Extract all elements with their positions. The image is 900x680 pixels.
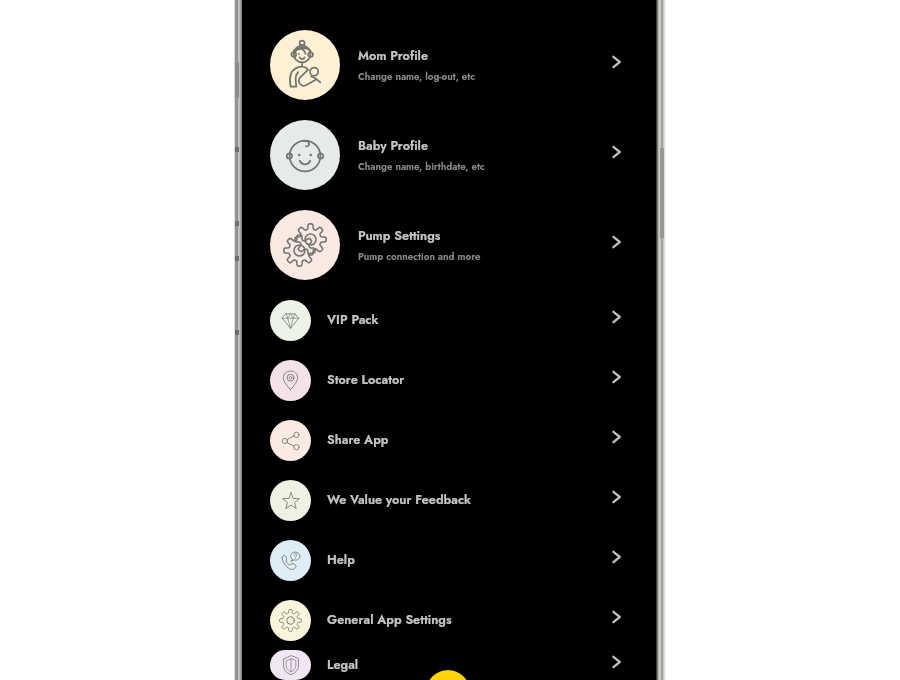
button[interactable]: Baby Profile: [242, 110, 656, 200]
staticText: Pump connection and more: [358, 250, 481, 264]
staticText: Change name, log-out, etc: [358, 70, 476, 84]
button[interactable]: Pump Settings: [242, 200, 656, 290]
button[interactable]: General App Settings: [242, 590, 656, 650]
button[interactable]: Legal: [242, 650, 656, 680]
staticText: Help: [327, 551, 611, 569]
button[interactable]: Mom Profile: [242, 20, 656, 110]
button[interactable]: VIP Pack: [242, 290, 656, 350]
staticText: We Value your Feedback: [327, 491, 611, 509]
staticText: General App Settings: [327, 611, 611, 629]
staticText: Share App: [327, 431, 611, 449]
staticText: Store Locator: [327, 371, 611, 389]
staticText: VIP Pack: [327, 311, 611, 329]
staticText: Legal: [327, 656, 611, 674]
staticText: Pump Settings: [358, 227, 441, 245]
button[interactable]: We Value your Feedback: [242, 470, 656, 530]
staticText: Change name, birthdate, etc: [358, 160, 485, 174]
button[interactable]: Help: [242, 530, 656, 590]
button[interactable]: Share App: [242, 410, 656, 470]
staticText: Mom Profile: [358, 47, 428, 65]
button[interactable]: Add entry: [426, 670, 470, 680]
button[interactable]: Store Locator: [242, 350, 656, 410]
staticText: Baby Profile: [358, 137, 428, 155]
